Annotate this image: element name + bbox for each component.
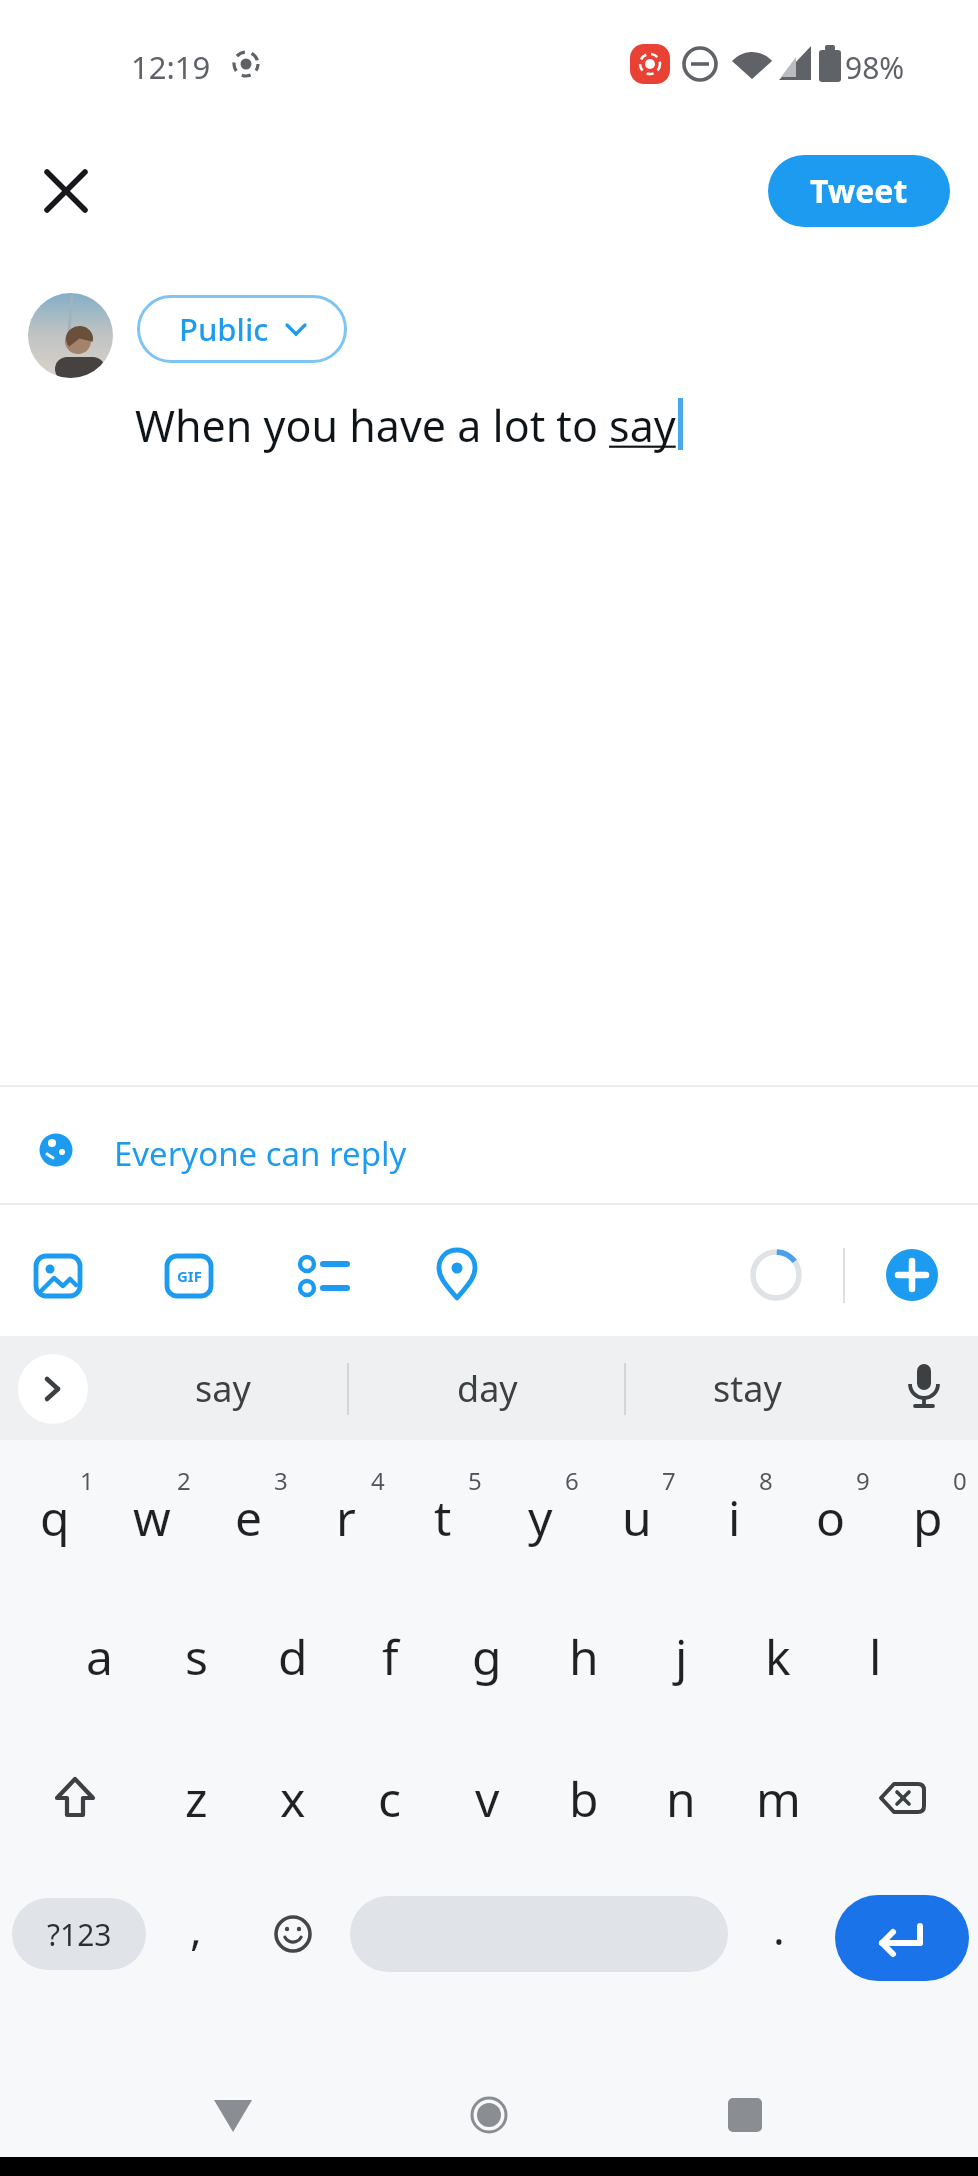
button[interactable]: .: [734, 1883, 824, 1973]
button[interactable]: k: [733, 1611, 823, 1701]
staticText: 8: [759, 1464, 773, 1497]
button[interactable]: Public: [137, 295, 347, 363]
staticText: o: [816, 1485, 846, 1550]
button[interactable]: n: [636, 1753, 726, 1843]
button[interactable]: stay: [675, 1352, 820, 1424]
button[interactable]: [38, 163, 94, 219]
button[interactable]: l: [830, 1611, 920, 1701]
button[interactable]: [30, 1753, 120, 1843]
staticText: d: [278, 1624, 308, 1689]
button[interactable]: [439, 2064, 539, 2164]
button[interactable]: j: [636, 1611, 726, 1701]
button[interactable]: p: [883, 1472, 973, 1562]
button[interactable]: [835, 1895, 969, 1981]
button[interactable]: i: [689, 1472, 779, 1562]
staticText: a: [86, 1624, 113, 1689]
staticText: 1: [80, 1464, 94, 1497]
staticText: g: [472, 1624, 502, 1689]
staticText: day: [457, 1364, 518, 1413]
staticText: 4: [371, 1464, 385, 1497]
staticText: Public: [179, 308, 269, 350]
button[interactable]: Everyone can reply: [0, 1087, 978, 1203]
staticText: q: [40, 1485, 70, 1550]
button[interactable]: z: [151, 1753, 241, 1843]
staticText: k: [765, 1624, 791, 1689]
button[interactable]: ,: [151, 1883, 241, 1973]
button[interactable]: d: [248, 1611, 338, 1701]
button[interactable]: Tweet: [768, 155, 950, 227]
button[interactable]: ?123: [12, 1898, 146, 1970]
staticText: r: [336, 1485, 356, 1550]
button[interactable]: say: [150, 1352, 295, 1424]
staticText: c: [378, 1766, 402, 1831]
staticText: w: [133, 1485, 171, 1550]
button[interactable]: [856, 1753, 946, 1843]
button[interactable]: o: [786, 1472, 876, 1562]
staticText: Everyone can reply: [114, 1131, 407, 1176]
button[interactable]: [183, 2064, 283, 2164]
button[interactable]: m: [733, 1753, 823, 1843]
button[interactable]: [28, 293, 113, 378]
staticText: f: [382, 1624, 399, 1689]
staticText: 6: [565, 1464, 579, 1497]
staticText: v: [475, 1766, 500, 1831]
button[interactable]: GIF: [155, 1242, 223, 1310]
button[interactable]: u: [592, 1472, 682, 1562]
staticText: ?123: [47, 1914, 112, 1955]
staticText: 9: [856, 1464, 870, 1497]
button[interactable]: w: [107, 1472, 197, 1562]
staticText: 5: [468, 1464, 482, 1497]
button[interactable]: [892, 1358, 956, 1422]
button[interactable]: g: [442, 1611, 532, 1701]
staticText: p: [913, 1485, 943, 1550]
staticText: 7: [662, 1464, 676, 1497]
staticText: z: [185, 1766, 208, 1831]
button[interactable]: t: [398, 1472, 488, 1562]
staticText: 2: [177, 1464, 191, 1497]
button[interactable]: y: [495, 1472, 585, 1562]
staticText: 0: [953, 1464, 967, 1497]
staticText: stay: [713, 1364, 782, 1413]
button[interactable]: s: [151, 1611, 241, 1701]
staticText: h: [569, 1624, 599, 1689]
button[interactable]: v: [442, 1753, 532, 1843]
button[interactable]: [886, 1249, 938, 1301]
staticText: b: [569, 1766, 599, 1831]
staticText: 3: [274, 1464, 288, 1497]
button[interactable]: b: [539, 1753, 629, 1843]
staticText: j: [675, 1624, 688, 1689]
button[interactable]: q: [10, 1472, 100, 1562]
button[interactable]: f: [345, 1611, 435, 1701]
staticText: y: [528, 1485, 553, 1550]
button[interactable]: r: [301, 1472, 391, 1562]
staticText: u: [622, 1485, 652, 1550]
button[interactable]: e: [204, 1472, 294, 1562]
staticText: m: [756, 1766, 801, 1831]
button[interactable]: [695, 2064, 795, 2164]
button[interactable]: a: [54, 1611, 144, 1701]
staticText: ,: [190, 1898, 202, 1958]
staticText: GIF: [177, 1266, 202, 1286]
staticText: .: [773, 1898, 785, 1958]
staticText: t: [434, 1485, 452, 1550]
staticText: i: [728, 1485, 741, 1550]
staticText: Tweet: [810, 169, 908, 213]
staticText: s: [185, 1624, 208, 1689]
button[interactable]: [18, 1354, 88, 1424]
staticText: 12:19: [131, 46, 211, 88]
button[interactable]: h: [539, 1611, 629, 1701]
button[interactable]: [24, 1242, 92, 1310]
button[interactable]: [263, 1904, 323, 1964]
staticText: say: [195, 1364, 251, 1413]
staticText: When you have a lot to say: [135, 396, 676, 455]
staticText: n: [666, 1766, 696, 1831]
staticText: l: [869, 1624, 882, 1689]
button[interactable]: [288, 1242, 356, 1310]
staticText: x: [280, 1766, 306, 1831]
button[interactable]: day: [415, 1352, 560, 1424]
button[interactable]: c: [345, 1753, 435, 1843]
button[interactable]: [350, 1896, 728, 1972]
button[interactable]: [423, 1240, 491, 1308]
staticText: 98%: [845, 47, 905, 88]
button[interactable]: x: [248, 1753, 338, 1843]
